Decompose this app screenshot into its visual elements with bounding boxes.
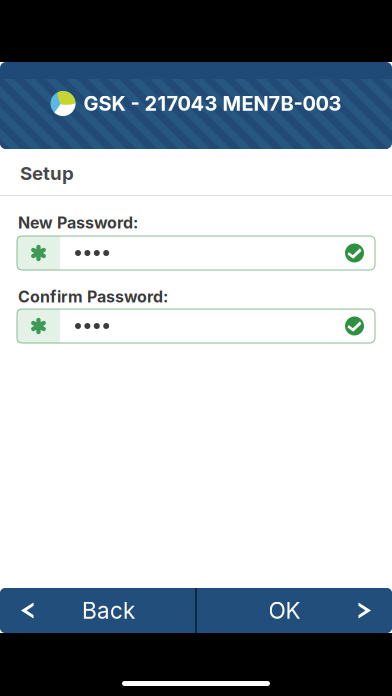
staticText: Setup [20,162,74,185]
staticText: OK [268,597,300,624]
staticText: Confirm Password: [18,287,168,306]
button[interactable]: Confirm Password [17,309,375,343]
staticText: Back [82,597,135,624]
staticText: GSK - 217043 MEN7B-003 [83,91,341,116]
staticText: New Password: [18,213,138,232]
button[interactable]: New Password [17,236,375,270]
button[interactable]: OK [196,588,392,633]
button[interactable]: Back [0,588,196,633]
